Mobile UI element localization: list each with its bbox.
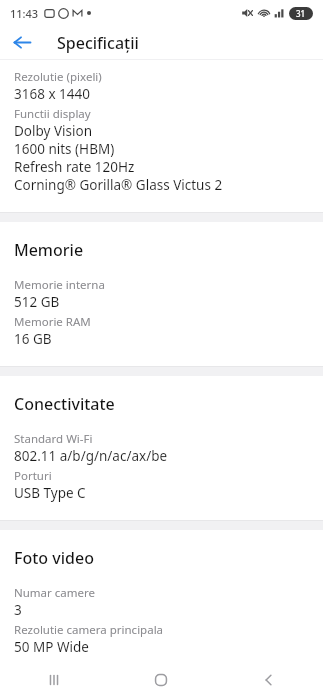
staticText: Rezolutie camera principala (14, 622, 164, 638)
staticText: 31 (296, 8, 306, 19)
staticText: Corning® Gorilla® Glass Victus 2 (14, 176, 223, 194)
staticText: Porturi (14, 468, 52, 484)
staticText: Memorie interna (14, 277, 105, 293)
staticText: USB Type C (14, 484, 86, 502)
staticText: 1600 nits (HBM) (14, 140, 115, 158)
staticText: Standard Wi-Fi (14, 431, 93, 447)
staticText: 3 (14, 601, 22, 619)
button[interactable]: Recent apps (0, 660, 107, 700)
staticText: 3168 x 1440 (14, 85, 90, 103)
staticText: Refresh rate 120Hz (14, 158, 135, 176)
staticText: 11:43 (10, 6, 39, 21)
staticText: Memorie (14, 239, 84, 261)
staticText: 50 MP Wide (14, 638, 89, 656)
staticText: 802.11 a/b/g/n/ac/ax/be (14, 447, 168, 465)
staticText: Specificații (57, 32, 139, 54)
button[interactable]: Back (0, 26, 44, 59)
staticText: 16 GB (14, 330, 52, 348)
staticText: Memorie RAM (14, 314, 91, 330)
staticText: Foto video (14, 547, 94, 569)
staticText: Dolby Vision (14, 122, 92, 140)
button[interactable]: Back (215, 660, 323, 700)
staticText: 512 GB (14, 293, 60, 311)
staticText: Numar camere (14, 585, 96, 601)
button[interactable]: Home (107, 660, 215, 700)
staticText: Functii display (14, 106, 91, 122)
staticText: Rezolutie (pixeli) (14, 69, 102, 85)
staticText: Conectivitate (14, 393, 115, 415)
